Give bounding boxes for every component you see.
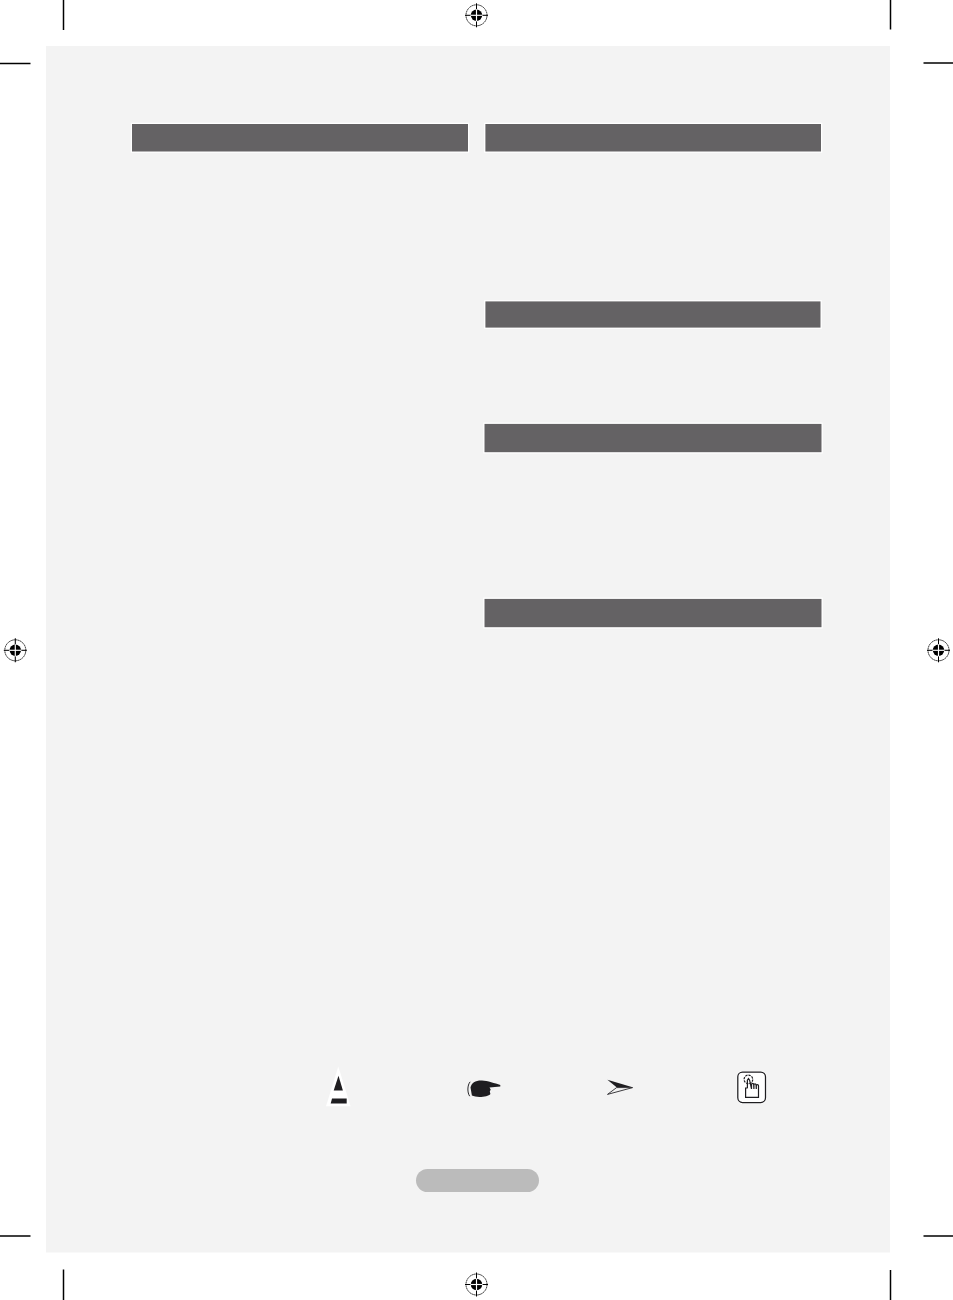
- button[interactable]: Caution: [323, 1063, 354, 1110]
- button[interactable]: Send: [601, 1073, 635, 1103]
- button[interactable]: Page number: [416, 1169, 539, 1192]
- button[interactable]: Press button: [733, 1067, 770, 1107]
- button[interactable]: Note, see reference: [463, 1073, 506, 1105]
